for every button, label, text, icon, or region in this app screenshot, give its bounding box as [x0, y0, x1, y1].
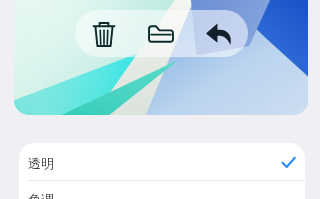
button[interactable]: Delete [75, 10, 132, 57]
button[interactable]: Reply [190, 10, 248, 57]
staticText: 透明 [28, 155, 281, 171]
button[interactable]: 色调 [19, 181, 305, 199]
staticText: 色调 [28, 191, 296, 199]
button[interactable]: 透明 [19, 145, 305, 180]
button[interactable]: Move to folder [132, 10, 190, 57]
